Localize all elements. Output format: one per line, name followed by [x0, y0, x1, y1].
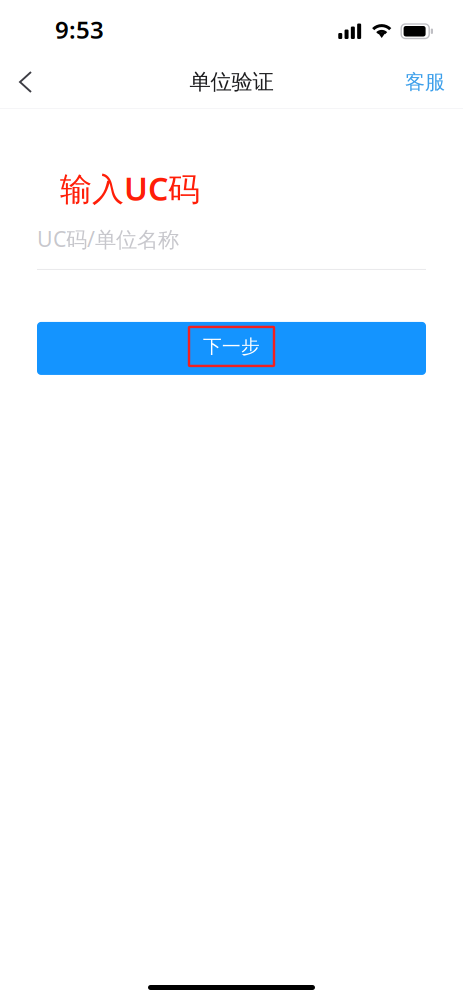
- staticText: UC码/单位名称: [37, 224, 179, 253]
- button[interactable]: Back: [0, 59, 45, 105]
- button[interactable]: 下一步: [0, 270, 463, 375]
- button[interactable]: UC码/单位名称: [0, 209, 463, 270]
- staticText: 输入UC码: [60, 167, 200, 209]
- staticText: 客服: [405, 70, 445, 94]
- staticText: 下一步: [203, 335, 260, 358]
- staticText: 单位验证: [189, 69, 273, 95]
- staticText: 9:53: [55, 14, 104, 45]
- button[interactable]: 客服: [389, 57, 463, 107]
